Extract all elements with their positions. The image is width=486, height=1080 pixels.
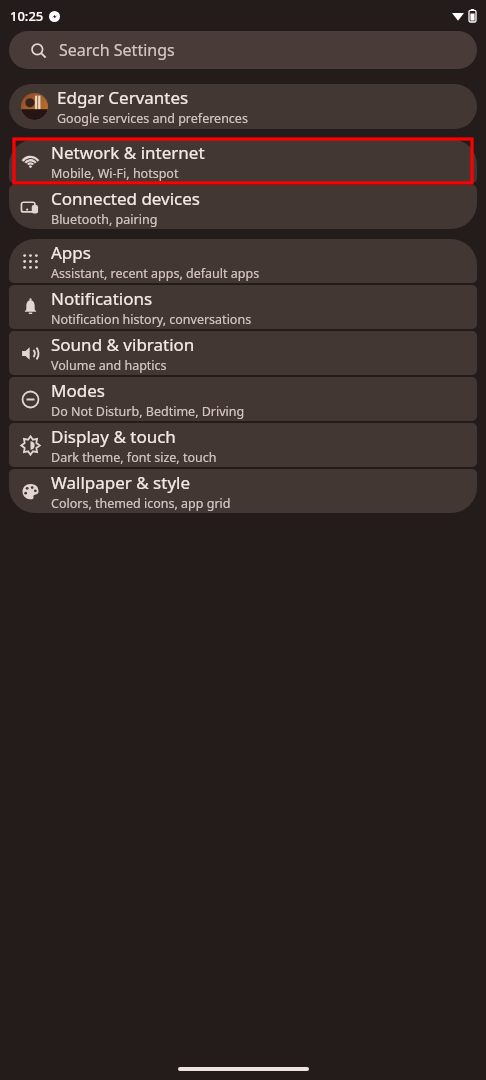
staticText: Edgar Cervantes (57, 86, 189, 109)
button[interactable]: Edgar Cervantes (9, 84, 477, 129)
staticText: Network & internet (51, 141, 205, 164)
staticText: 10:25 (10, 7, 44, 25)
staticText: Search Settings (59, 39, 175, 61)
staticText: Assistant, recent apps, default apps (51, 265, 260, 282)
button[interactable]: Connected devices (9, 185, 477, 229)
other: Wallpaper and style (20, 481, 41, 502)
button[interactable]: Search Settings (9, 31, 477, 69)
button[interactable]: Modes (9, 377, 477, 421)
button[interactable]: Wallpaper and style (9, 469, 477, 513)
staticText: Bluetooth, pairing (51, 211, 158, 228)
other: Apps (20, 251, 41, 272)
other: Display and touch (20, 435, 41, 456)
staticText: Do Not Disturb, Bedtime, Driving (51, 403, 245, 420)
other: Connected devices (20, 197, 41, 218)
button[interactable]: Sound and vibration (9, 331, 477, 375)
staticText: Dark theme, font size, touch (51, 449, 217, 466)
other: Modes (20, 389, 41, 410)
staticText: Connected devices (51, 187, 201, 210)
staticText: Notification history, conversations (51, 311, 252, 328)
other: Network and internet (20, 151, 41, 172)
staticText: Sound & vibration (51, 333, 195, 356)
button[interactable]: Notifications (9, 285, 477, 329)
staticText: Google services and preferences (57, 110, 248, 127)
staticText: Notifications (51, 287, 153, 310)
staticText: Wallpaper & style (51, 471, 191, 494)
staticText: Display & touch (51, 425, 176, 448)
staticText: Volume and haptics (51, 357, 167, 374)
other: Notifications (20, 297, 41, 318)
staticText: Colors, themed icons, app grid (51, 495, 231, 512)
button[interactable]: Network and internet (9, 139, 477, 183)
staticText: Mobile, Wi-Fi, hotspot (51, 165, 179, 182)
button[interactable]: Apps (9, 239, 477, 283)
button[interactable]: Display and touch (9, 423, 477, 467)
other: Sound and vibration (20, 343, 41, 364)
staticText: Modes (51, 379, 105, 402)
staticText: Apps (51, 241, 91, 264)
